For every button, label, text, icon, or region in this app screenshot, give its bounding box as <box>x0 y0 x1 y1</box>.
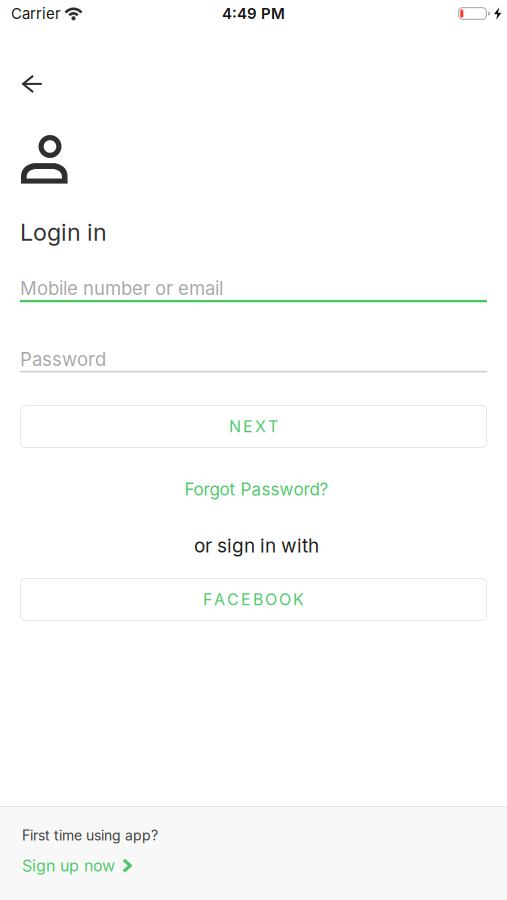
staticText: F <box>203 590 212 609</box>
staticText: B <box>253 590 263 609</box>
staticText: O <box>265 590 277 609</box>
button[interactable]: Back <box>13 68 51 100</box>
staticText: 4:49 PM <box>222 4 285 22</box>
staticText: K <box>293 590 304 609</box>
staticText: E <box>241 590 251 609</box>
staticText: Forgot Password? <box>184 479 328 500</box>
button[interactable]: Sign up now <box>22 856 132 875</box>
staticText: T <box>268 417 278 436</box>
staticText: Login in <box>20 218 107 246</box>
button[interactable]: Mobile number or email <box>20 277 487 302</box>
staticText: Sign up now <box>22 856 115 875</box>
staticText: N <box>229 417 241 436</box>
staticText: Mobile number or email <box>20 277 223 299</box>
staticText: Password <box>20 348 106 370</box>
button[interactable]: Forgot Password? <box>3 479 507 500</box>
staticText: X <box>255 417 266 436</box>
button[interactable]: F <box>20 578 487 621</box>
staticText: A <box>214 590 225 609</box>
button[interactable]: N <box>20 405 487 448</box>
button[interactable]: Password <box>20 348 487 372</box>
staticText: E <box>243 417 253 436</box>
staticText: or sign in with <box>194 534 319 557</box>
staticText: C <box>227 590 239 609</box>
staticText: First time using app? <box>22 827 158 844</box>
staticText: Carrier <box>11 4 61 22</box>
staticText: O <box>279 590 291 609</box>
